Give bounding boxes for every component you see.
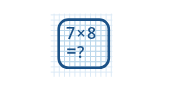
button[interactable]: Multiplication flashcard: [0, 0, 170, 89]
staticText: ?: [77, 41, 85, 63]
staticText: 7×8: [66, 22, 98, 44]
